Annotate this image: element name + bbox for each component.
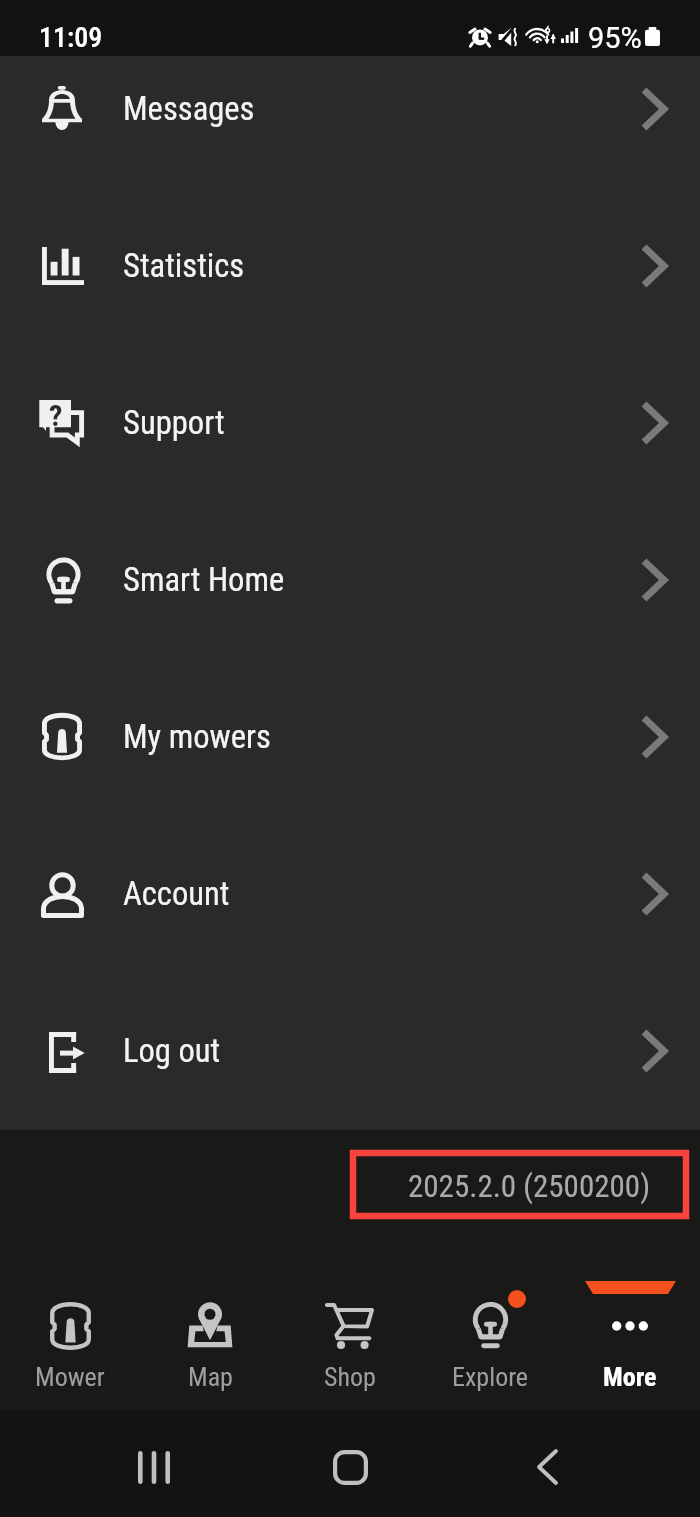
- staticText: 2025.2.0 (2500200): [408, 1168, 651, 1204]
- button[interactable]: Statistics: [0, 187, 700, 344]
- staticText: Shop: [324, 1362, 376, 1392]
- button[interactable]: Home: [300, 1424, 400, 1510]
- button[interactable]: Shop: [280, 1280, 420, 1410]
- button[interactable]: My mowers: [0, 658, 700, 815]
- staticText: Statistics: [123, 247, 245, 285]
- staticText: ?: [49, 398, 63, 433]
- button[interactable]: Smart Home: [0, 501, 700, 658]
- staticText: 11:09: [39, 21, 103, 54]
- staticText: Log out: [123, 1032, 221, 1070]
- button[interactable]: Map: [140, 1280, 280, 1410]
- button[interactable]: Messages: [0, 30, 700, 187]
- staticText: Map: [188, 1362, 233, 1392]
- button[interactable]: More: [560, 1280, 700, 1410]
- staticText: Account: [123, 875, 230, 913]
- button[interactable]: Explore: [420, 1280, 560, 1410]
- button[interactable]: ?: [0, 344, 700, 501]
- staticText: Explore: [452, 1362, 529, 1392]
- button[interactable]: Account: [0, 815, 700, 972]
- button[interactable]: Recent apps: [104, 1424, 204, 1510]
- staticText: 95%: [588, 21, 642, 55]
- button[interactable]: Back: [497, 1424, 597, 1510]
- staticText: Smart Home: [123, 561, 285, 599]
- staticText: More: [603, 1362, 657, 1392]
- button[interactable]: Log out: [0, 972, 700, 1129]
- staticText: Mower: [35, 1362, 105, 1392]
- staticText: Messages: [123, 90, 255, 128]
- staticText: Support: [123, 404, 225, 442]
- button[interactable]: Mower: [0, 1280, 140, 1410]
- staticText: My mowers: [123, 718, 271, 756]
